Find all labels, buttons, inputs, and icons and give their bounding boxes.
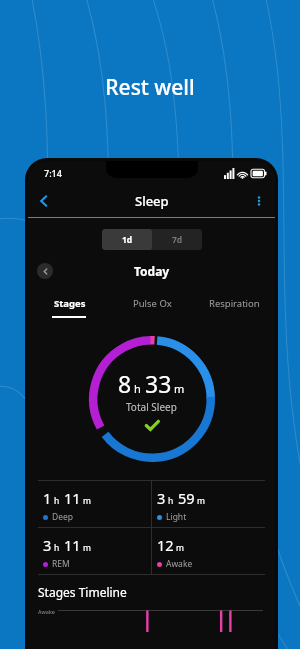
staticText: 33 [145, 368, 172, 399]
staticText: Pulse Ox [133, 297, 172, 310]
staticText: Sleep [135, 192, 169, 210]
staticText: Light [166, 511, 187, 523]
staticText: 7d [172, 234, 183, 246]
staticText: Respiration [209, 297, 260, 310]
button[interactable]: Respiration [193, 291, 275, 316]
staticText: Rest well [0, 73, 300, 102]
staticText: 3 [157, 488, 166, 508]
staticText: m [83, 542, 91, 554]
staticText: 1 [43, 488, 52, 508]
staticText: 7:14 [44, 167, 62, 179]
staticText: 8 [118, 368, 132, 399]
button[interactable]: Stages [28, 291, 111, 316]
staticText: 12 [157, 535, 174, 555]
button[interactable]: Previous day [37, 263, 53, 279]
staticText: Stages Timeline [38, 584, 127, 600]
staticText: h [54, 495, 60, 507]
staticText: h [134, 381, 141, 396]
staticText: m [83, 495, 91, 507]
staticText: 59 [178, 488, 195, 508]
button[interactable]: 1 [38, 481, 151, 527]
staticText: m [174, 381, 185, 396]
staticText: Awake [166, 558, 193, 570]
button[interactable]: 1d [102, 229, 152, 250]
button[interactable]: 12 [152, 528, 265, 574]
staticText: 11 [64, 535, 81, 555]
staticText: Awake [38, 608, 55, 615]
staticText: m [176, 542, 184, 554]
staticText: h [168, 495, 174, 507]
button[interactable]: 7d [152, 229, 202, 250]
staticText: 11 [64, 488, 81, 508]
button[interactable]: 3 [152, 481, 265, 527]
staticText: m [197, 495, 205, 507]
staticText: 3 [43, 535, 52, 555]
staticText: Deep [52, 511, 74, 523]
staticText: Total Sleep [126, 400, 177, 414]
staticText: h [54, 542, 60, 554]
staticText: REM [52, 558, 70, 570]
button[interactable]: Pulse Ox [111, 291, 193, 316]
button[interactable]: 3 [38, 528, 151, 574]
staticText: Stages [54, 297, 86, 310]
button[interactable]: Back [28, 185, 60, 217]
staticText: 1d [122, 234, 133, 246]
button[interactable]: More options [243, 185, 275, 217]
staticText: Today [134, 263, 170, 279]
